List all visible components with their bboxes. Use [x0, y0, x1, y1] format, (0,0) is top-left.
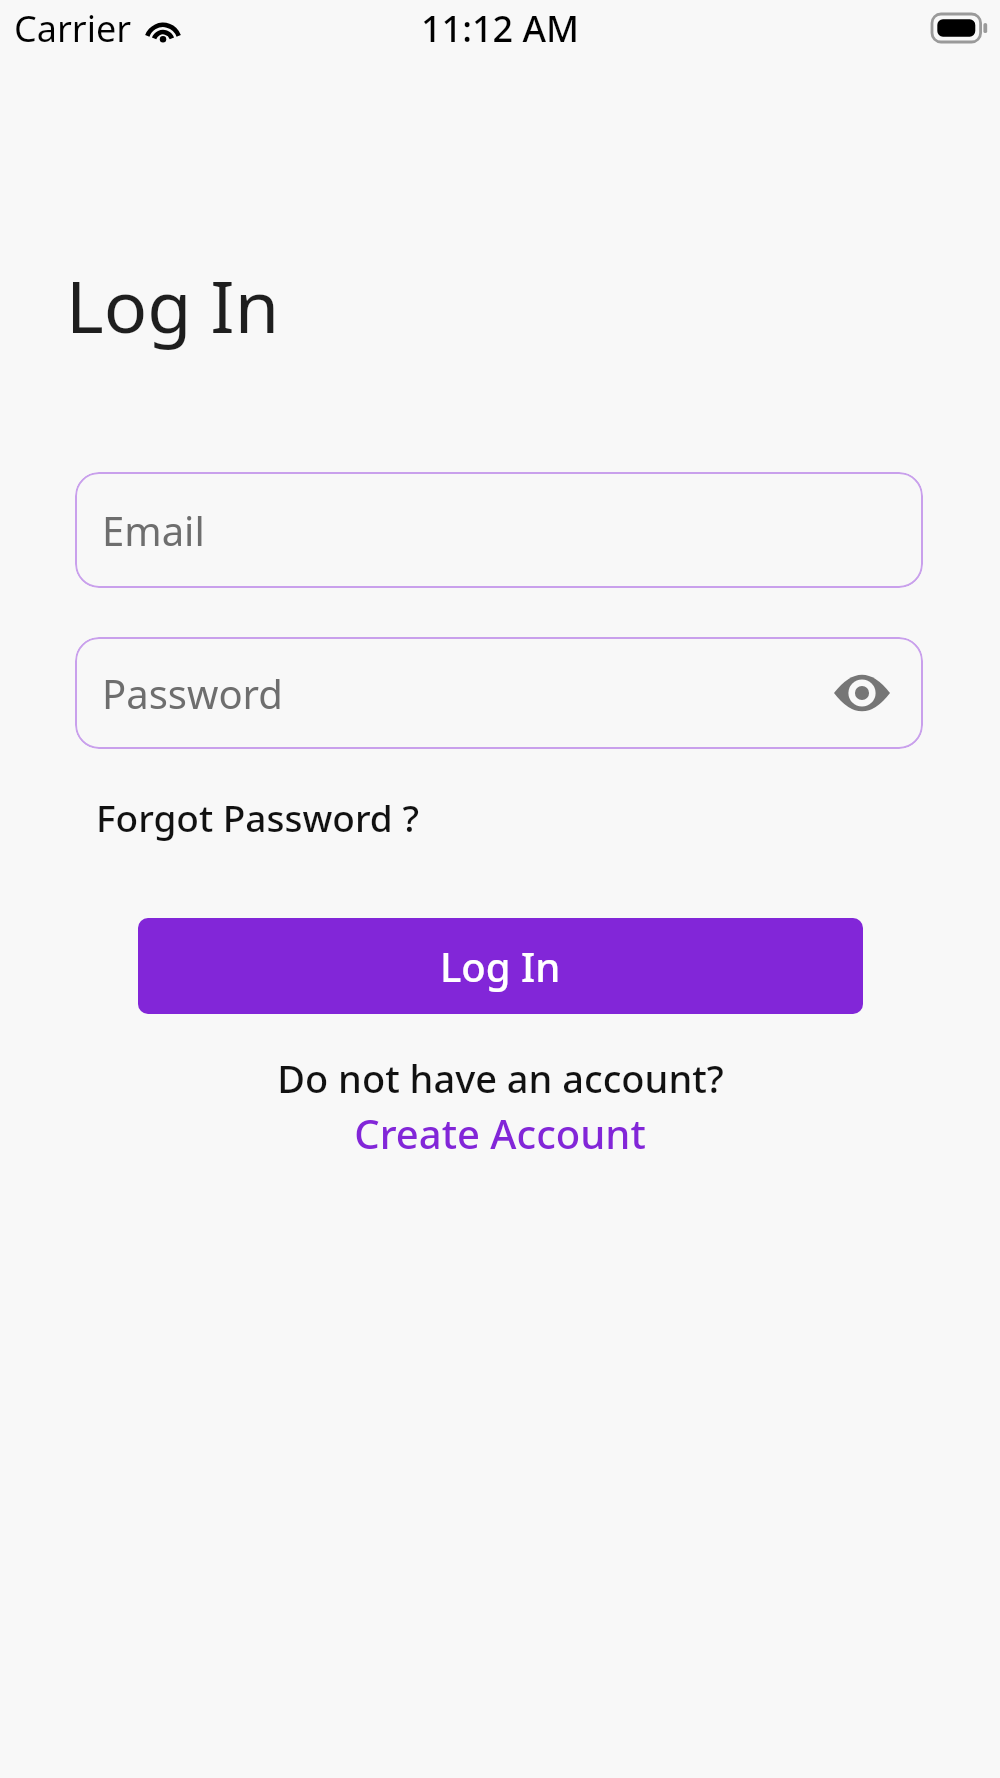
staticText: Password — [102, 666, 283, 720]
staticText: Carrier — [14, 4, 132, 53]
staticText: Do not have an account? — [277, 1052, 724, 1104]
button[interactable]: Email — [75, 472, 923, 588]
staticText: Forgot Password ? — [96, 792, 419, 842]
button[interactable]: Create Account — [344, 1104, 656, 1162]
staticText: Log In — [440, 939, 561, 993]
staticText: Create Account — [354, 1106, 646, 1160]
staticText: Email — [102, 503, 205, 557]
staticText: Log In — [66, 256, 280, 354]
button[interactable]: Show password — [831, 662, 893, 724]
staticText: 11:12 AM — [421, 4, 580, 53]
button[interactable]: Log In — [138, 918, 863, 1014]
button[interactable]: Forgot Password ? — [84, 788, 431, 846]
button[interactable]: Password — [75, 637, 923, 749]
